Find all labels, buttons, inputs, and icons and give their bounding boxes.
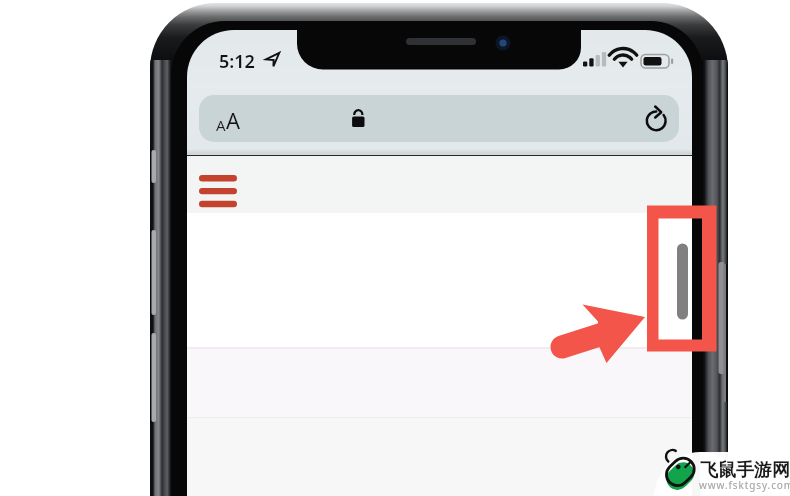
button[interactable]: Menu — [193, 166, 243, 214]
staticText: A — [216, 115, 226, 135]
staticText: 5:12 — [219, 49, 255, 74]
staticText: www.fsktgsy.com — [699, 478, 790, 492]
button[interactable]: Reload page — [634, 98, 678, 142]
button[interactable]: Secure connection — [330, 98, 374, 142]
staticText: 飞鼠手游网 — [700, 459, 790, 482]
staticText: A — [226, 105, 241, 135]
button[interactable]: Page settings — [204, 101, 252, 139]
